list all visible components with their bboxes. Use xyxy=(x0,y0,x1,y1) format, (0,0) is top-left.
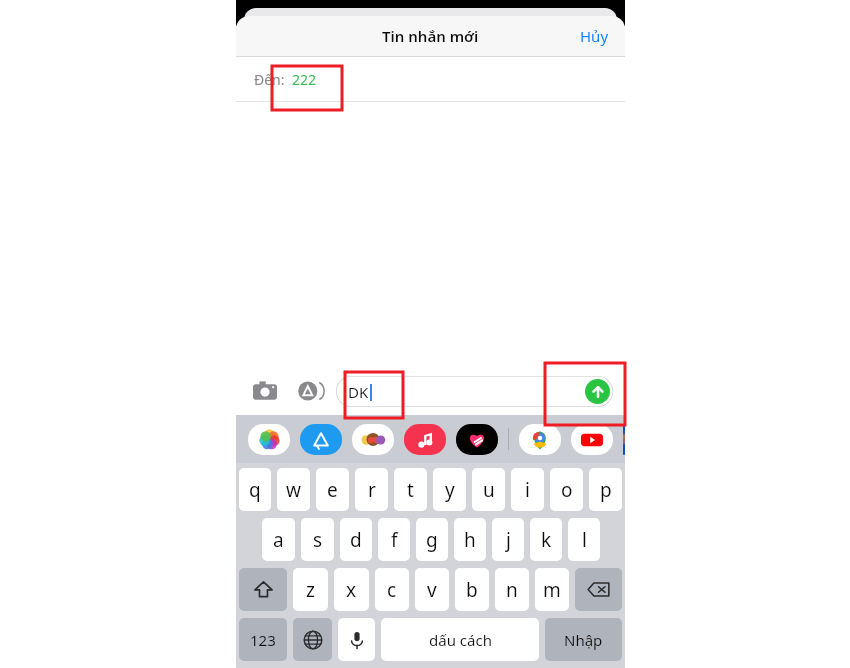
button[interactable]: Shift xyxy=(239,568,287,611)
button[interactable]: q xyxy=(239,468,271,511)
staticText: j xyxy=(506,527,511,553)
staticText: l xyxy=(582,527,587,553)
staticText: u xyxy=(483,477,495,503)
button[interactable]: d xyxy=(340,518,372,561)
staticText: dấu cách xyxy=(429,630,492,650)
staticText: 222 xyxy=(292,70,317,89)
staticText: 123 xyxy=(250,630,276,650)
button[interactable]: App xyxy=(623,424,625,455)
button[interactable]: b xyxy=(455,568,489,611)
staticText: Nhập xyxy=(564,630,603,650)
staticText: DK xyxy=(348,382,369,402)
button[interactable]: e xyxy=(316,468,349,511)
button[interactable]: App xyxy=(519,424,561,455)
staticText: t xyxy=(407,477,414,503)
staticText: i xyxy=(525,477,530,503)
button[interactable]: r xyxy=(355,468,388,511)
button[interactable]: s xyxy=(301,518,334,561)
button[interactable]: Camera xyxy=(248,374,282,408)
button[interactable]: Hủy xyxy=(576,22,613,50)
staticText: g xyxy=(426,527,438,553)
staticText: b xyxy=(466,577,478,603)
button[interactable]: y xyxy=(433,468,466,511)
staticText: r xyxy=(368,477,376,503)
button[interactable]: Send xyxy=(585,379,610,404)
button[interactable]: i xyxy=(511,468,544,511)
button[interactable]: Dictate xyxy=(338,618,375,661)
button[interactable]: DK xyxy=(336,376,613,407)
button[interactable]: App xyxy=(248,424,290,455)
staticText: k xyxy=(541,527,552,553)
button[interactable]: k xyxy=(530,518,562,561)
button[interactable]: u xyxy=(472,468,505,511)
button[interactable]: App xyxy=(404,424,446,455)
staticText: v xyxy=(427,577,437,603)
button[interactable]: dấu cách xyxy=(381,618,539,661)
button[interactable]: f xyxy=(378,518,410,561)
button[interactable]: j xyxy=(492,518,524,561)
button[interactable]: 123 xyxy=(239,618,287,661)
staticText: Tin nhắn mới xyxy=(382,26,479,46)
button[interactable]: App xyxy=(300,424,342,455)
staticText: w xyxy=(286,477,301,503)
staticText: Hủy xyxy=(580,26,609,46)
staticText: d xyxy=(350,527,362,553)
staticText: z xyxy=(306,577,315,603)
button[interactable]: t xyxy=(394,468,427,511)
button[interactable]: Backspace xyxy=(575,568,622,611)
staticText: n xyxy=(506,577,518,603)
staticText: f xyxy=(391,527,398,553)
staticText: x xyxy=(346,577,357,603)
button[interactable]: Change keyboard xyxy=(293,618,332,661)
button[interactable]: w xyxy=(277,468,310,511)
button[interactable]: o xyxy=(550,468,583,511)
button[interactable]: v xyxy=(415,568,449,611)
button[interactable]: g xyxy=(416,518,448,561)
staticText: m xyxy=(543,577,561,603)
button[interactable]: l xyxy=(568,518,600,561)
staticText: a xyxy=(273,527,284,553)
button[interactable]: App Store xyxy=(292,374,326,408)
staticText: o xyxy=(561,477,573,503)
button[interactable]: h xyxy=(454,518,486,561)
staticText: c xyxy=(387,577,397,603)
button[interactable]: App xyxy=(352,424,394,455)
staticText: e xyxy=(327,477,338,503)
staticText: s xyxy=(313,527,323,553)
button[interactable]: App xyxy=(456,424,498,455)
button[interactable]: c xyxy=(375,568,409,611)
staticText: Đến: xyxy=(254,70,285,89)
staticText: y xyxy=(445,477,455,503)
button[interactable]: p xyxy=(589,468,622,511)
button[interactable]: z xyxy=(293,568,328,611)
button[interactable]: n xyxy=(495,568,529,611)
staticText: p xyxy=(600,477,612,503)
staticText: q xyxy=(249,477,261,503)
button[interactable]: App xyxy=(571,424,613,455)
staticText: h xyxy=(464,527,476,553)
button[interactable]: x xyxy=(334,568,369,611)
button[interactable]: Nhập xyxy=(545,618,622,661)
button[interactable]: m xyxy=(535,568,569,611)
button[interactable]: a xyxy=(262,518,295,561)
